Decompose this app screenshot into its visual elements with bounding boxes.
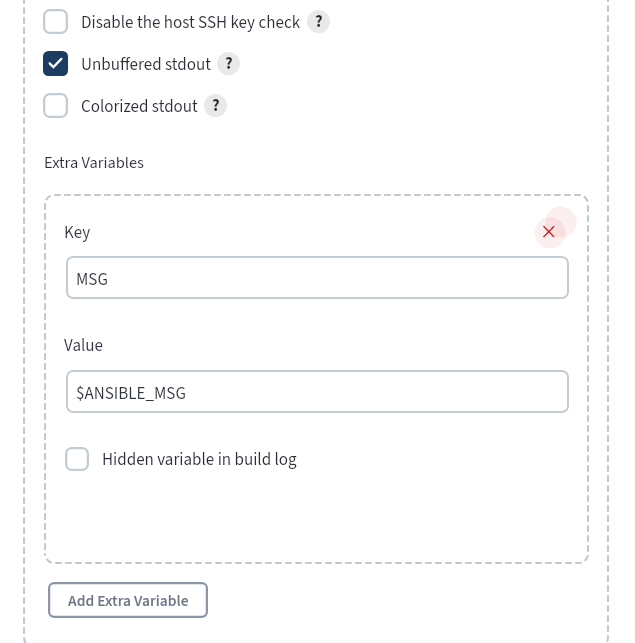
button[interactable]: $ANSIBLE_MSG — [66, 370, 569, 413]
staticText: Value — [64, 334, 103, 358]
staticText: Unbuffered stdout — [81, 53, 211, 77]
button[interactable]: Hidden variable in build log — [65, 447, 297, 471]
staticText: ? — [212, 94, 220, 117]
staticText: Add Extra Variable — [68, 590, 189, 612]
staticText: MSG — [76, 268, 108, 292]
staticText: Disable the host SSH key check — [81, 11, 301, 35]
staticText: Hidden variable in build log — [102, 448, 297, 472]
staticText: Key — [64, 221, 91, 245]
staticText: ? — [315, 10, 323, 33]
button[interactable]: Help — [217, 52, 240, 75]
button[interactable]: Remove variable — [532, 204, 578, 250]
button[interactable]: Help — [204, 94, 227, 117]
button[interactable]: Colorized stdout — [43, 93, 227, 118]
staticText: $ANSIBLE_MSG — [76, 382, 186, 406]
button[interactable]: Disable the host SSH key check — [43, 9, 330, 34]
button[interactable]: MSG — [66, 256, 569, 299]
staticText: Colorized stdout — [81, 95, 198, 119]
staticText: ? — [225, 52, 233, 75]
button[interactable]: Help — [307, 10, 330, 33]
button[interactable]: Unbuffered stdout — [43, 51, 240, 76]
button[interactable]: Add Extra Variable — [48, 582, 208, 618]
staticText: Extra Variables — [44, 151, 144, 174]
